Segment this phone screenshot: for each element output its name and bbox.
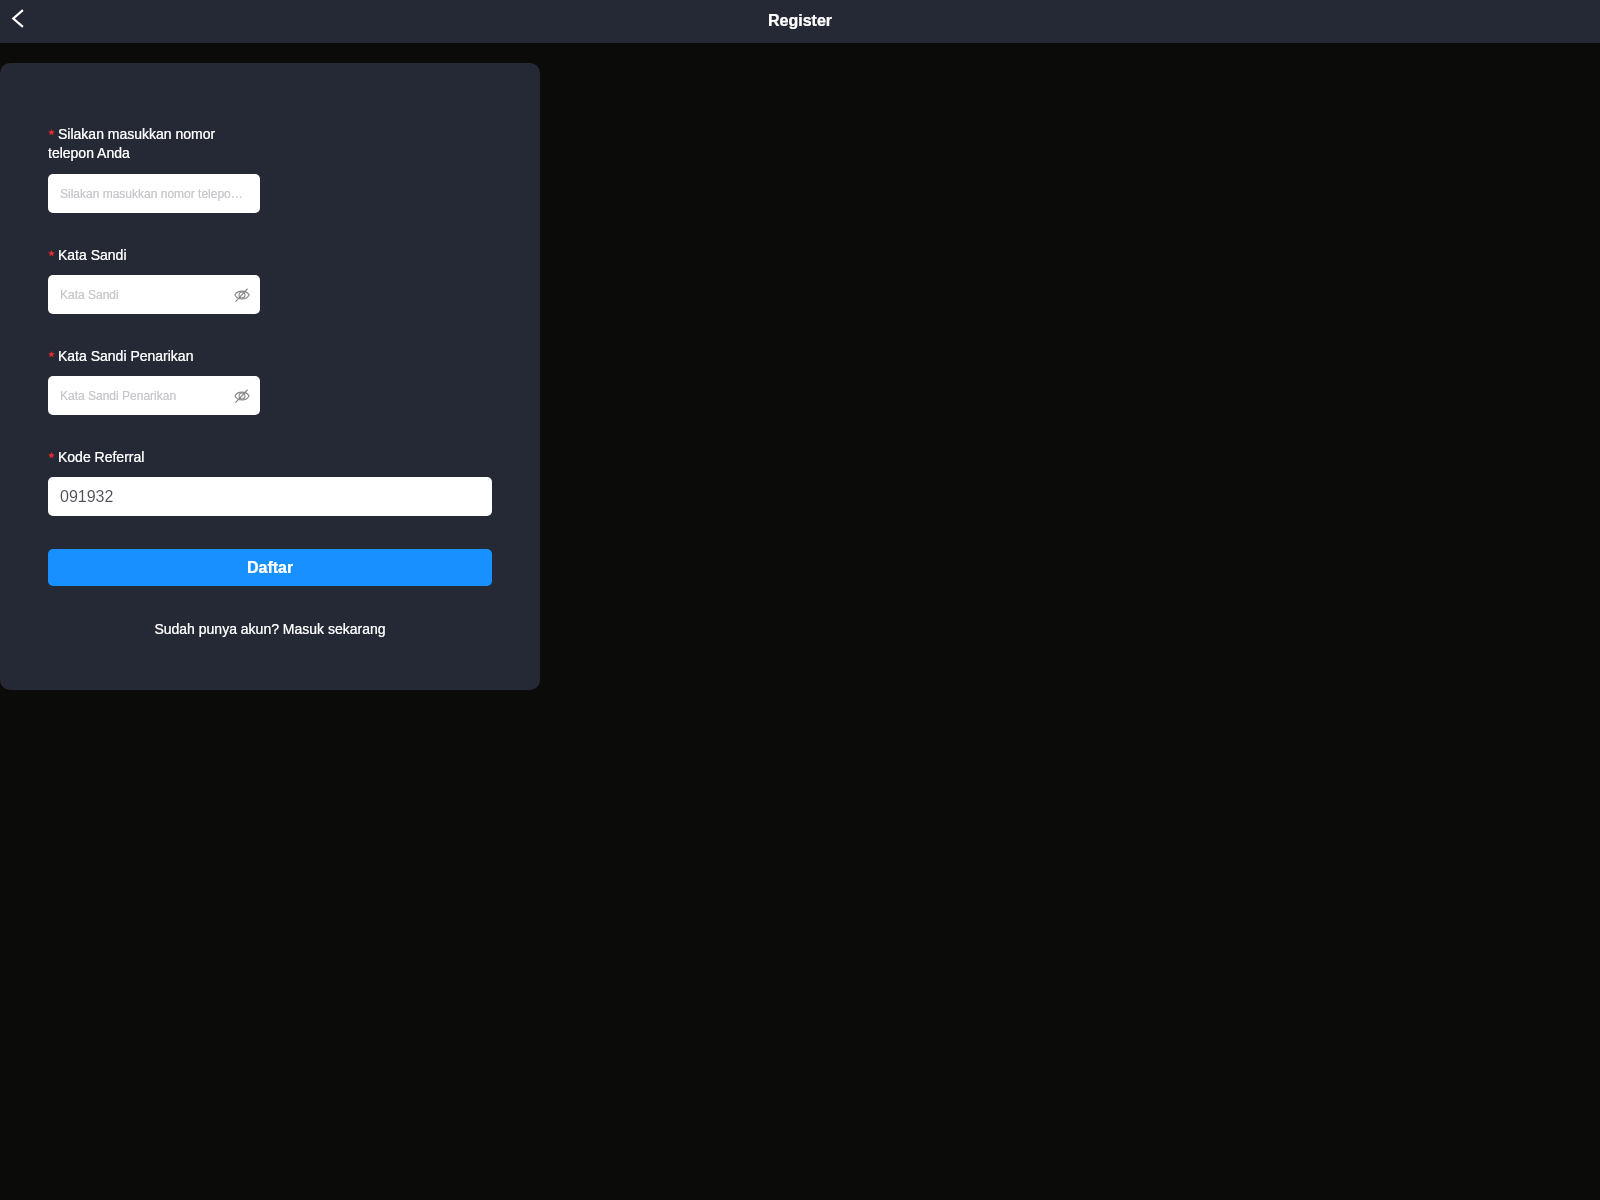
button[interactable]: Sudah punya akun? Masuk sekarang xyxy=(48,617,492,641)
staticText: Daftar xyxy=(247,559,294,577)
staticText: telepon Anda xyxy=(48,145,130,161)
staticText: Kata Sandi Penarikan xyxy=(58,348,194,364)
staticText: 091932 xyxy=(60,488,114,506)
button[interactable]: Kata Sandi Penarikan xyxy=(48,376,260,415)
button[interactable]: Show password xyxy=(232,386,252,406)
button[interactable]: Daftar xyxy=(48,549,492,586)
button[interactable]: Show password xyxy=(232,285,252,305)
staticText: Sudah punya akun? Masuk sekarang xyxy=(154,621,386,637)
staticText: Silakan masukkan nomor xyxy=(58,126,216,142)
staticText: Kata Sandi xyxy=(58,247,127,263)
button[interactable]: 091932 xyxy=(48,477,492,516)
staticText: Silakan masukkan nomor telepo… xyxy=(60,187,243,200)
staticText: Register xyxy=(768,12,833,30)
button[interactable]: Back xyxy=(0,0,42,43)
button[interactable]: Kata Sandi xyxy=(48,275,260,314)
button[interactable]: Silakan masukkan nomor telepo… xyxy=(48,174,260,213)
staticText: Kata Sandi xyxy=(60,288,119,301)
staticText: Kata Sandi Penarikan xyxy=(60,389,177,402)
staticText: Kode Referral xyxy=(58,449,145,465)
